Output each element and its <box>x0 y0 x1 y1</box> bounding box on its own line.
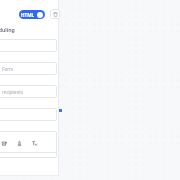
button[interactable] <box>0 108 57 121</box>
button[interactable]: recipients <box>0 85 57 98</box>
staticText: HTML <box>21 12 35 18</box>
button[interactable]: Formatting <box>31 140 38 147</box>
button[interactable]: Insert image <box>1 140 8 147</box>
staticText: recipients <box>2 89 24 95</box>
button[interactable]: Attach file <box>16 140 23 147</box>
staticText: Scheduling <box>0 26 15 33</box>
button[interactable] <box>0 39 57 52</box>
staticText: Form <box>2 66 14 72</box>
button[interactable]: Delete <box>50 9 60 19</box>
button[interactable]: Form <box>0 62 57 75</box>
button[interactable]: HTML <box>19 10 45 19</box>
